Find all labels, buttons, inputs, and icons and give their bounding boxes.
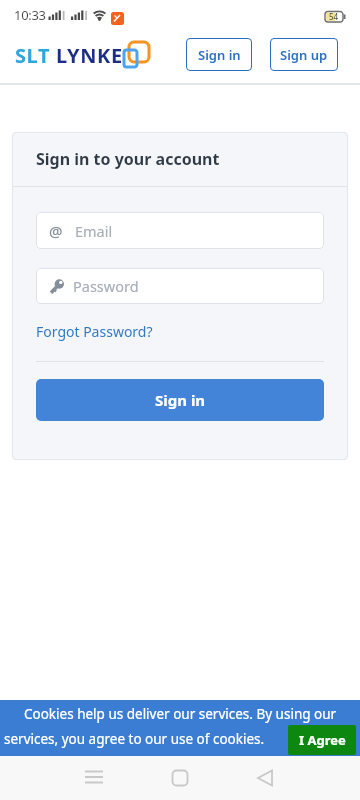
staticText: I Agree bbox=[299, 731, 346, 749]
button[interactable]: Forgot Password? bbox=[36, 322, 153, 341]
staticText: Sign in to your account bbox=[36, 148, 220, 170]
button[interactable] bbox=[237, 756, 293, 800]
button[interactable]: Password bbox=[36, 268, 324, 304]
staticText: services, you agree to our use of cookie… bbox=[4, 730, 265, 748]
button[interactable]: Sign up bbox=[270, 38, 338, 71]
staticText: Email bbox=[75, 221, 113, 241]
staticText: Cookies help us deliver our services. By… bbox=[24, 705, 337, 723]
staticText: SLT LYNKE bbox=[15, 42, 123, 69]
button[interactable]: @ bbox=[36, 212, 324, 249]
staticText: Sign in bbox=[198, 46, 241, 64]
button[interactable] bbox=[152, 756, 208, 800]
staticText: Sign in bbox=[155, 390, 206, 410]
button[interactable] bbox=[66, 756, 122, 800]
button[interactable]: I Agree bbox=[288, 725, 356, 755]
button[interactable]: Sign in bbox=[36, 379, 324, 421]
staticText: 10:33 bbox=[14, 6, 46, 24]
button[interactable]: Sign in bbox=[186, 38, 252, 71]
staticText: 54 bbox=[329, 11, 339, 22]
staticText: @ bbox=[49, 221, 63, 241]
staticText: Password bbox=[73, 276, 139, 296]
staticText: Sign up bbox=[280, 46, 328, 64]
